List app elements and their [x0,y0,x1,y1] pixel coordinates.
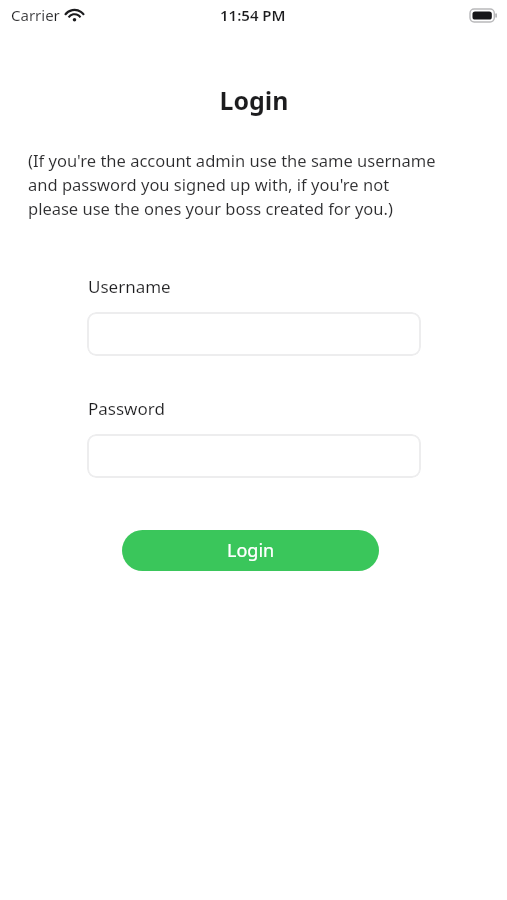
button[interactable]: Password input field [87,434,421,478]
staticText: Login [227,538,275,563]
staticText: 11:54 PM [220,5,286,25]
staticText: Username [88,275,507,298]
staticText: Login [219,83,289,117]
staticText: (If you're the account admin use the sam… [28,149,493,220]
staticText: Password [88,397,507,420]
staticText: Carrier [11,5,60,25]
button[interactable]: Login [122,530,379,571]
button[interactable]: Username input field [87,312,421,356]
